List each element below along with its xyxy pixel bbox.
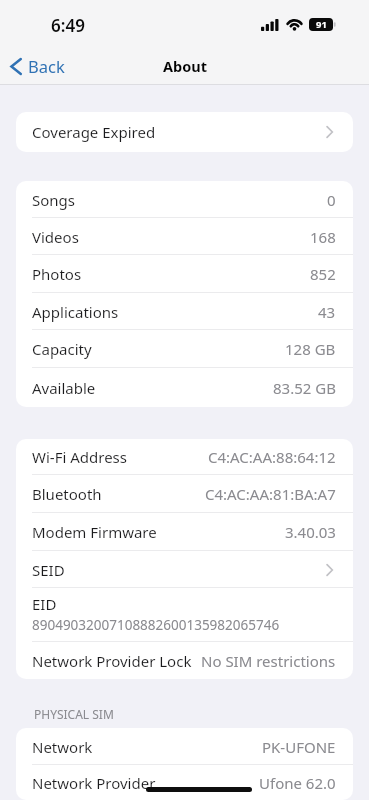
staticText: Modem Firmware <box>32 522 157 542</box>
button[interactable]: Coverage Expired <box>16 112 353 152</box>
button[interactable]: Wi-Fi Address <box>16 439 353 475</box>
staticText: Bluetooth <box>32 484 102 504</box>
staticText: Songs <box>32 190 75 210</box>
staticText: Network Provider Lock <box>32 651 192 671</box>
button[interactable]: Videos <box>16 218 353 255</box>
staticText: PHYSICAL SIM <box>34 706 114 722</box>
button[interactable]: Network <box>16 728 353 765</box>
button[interactable]: Capacity <box>16 330 353 368</box>
staticText: 89049032007108882600135982065746 <box>32 616 280 634</box>
staticText: 83.52 GB <box>273 378 336 398</box>
staticText: 91 <box>316 18 327 31</box>
staticText: Capacity <box>32 339 92 359</box>
button[interactable]: SEID <box>16 551 353 588</box>
staticText: Photos <box>32 264 82 284</box>
staticText: C4:AC:AA:88:64:12 <box>208 447 336 467</box>
staticText: Network Provider <box>32 773 156 793</box>
staticText: Wi-Fi Address <box>32 447 127 467</box>
button[interactable]: Available <box>16 368 353 407</box>
staticText: Available <box>32 378 96 398</box>
button[interactable]: Applications <box>16 293 353 330</box>
staticText: Applications <box>32 302 119 322</box>
staticText: 128 GB <box>285 339 336 359</box>
staticText: 6:49 <box>51 14 85 37</box>
staticText: Back <box>28 55 65 77</box>
staticText: Coverage Expired <box>32 122 156 142</box>
staticText: C4:AC:AA:81:BA:A7 <box>205 484 336 504</box>
staticText: Network <box>32 737 93 757</box>
staticText: Videos <box>32 227 79 247</box>
button[interactable]: Bluetooth <box>16 475 353 513</box>
staticText: Ufone 62.0 <box>259 773 336 793</box>
staticText: PK-UFONE <box>262 737 336 757</box>
staticText: No SIM restrictions <box>201 651 336 671</box>
button[interactable]: Songs <box>16 181 353 218</box>
staticText: EID <box>32 594 57 614</box>
staticText: 852 <box>310 264 336 284</box>
button[interactable]: Modem Firmware <box>16 513 353 551</box>
staticText: 43 <box>318 302 336 322</box>
button[interactable]: EID <box>16 588 353 642</box>
button[interactable]: Network Provider Lock <box>16 642 353 679</box>
button[interactable]: Network Provider <box>16 765 353 800</box>
staticText: 3.40.03 <box>285 522 336 542</box>
staticText: 0 <box>327 190 336 210</box>
button[interactable]: Back <box>6 52 69 80</box>
staticText: 168 <box>310 227 336 247</box>
button[interactable]: Photos <box>16 255 353 293</box>
staticText: About <box>163 56 207 76</box>
staticText: SEID <box>32 560 65 580</box>
